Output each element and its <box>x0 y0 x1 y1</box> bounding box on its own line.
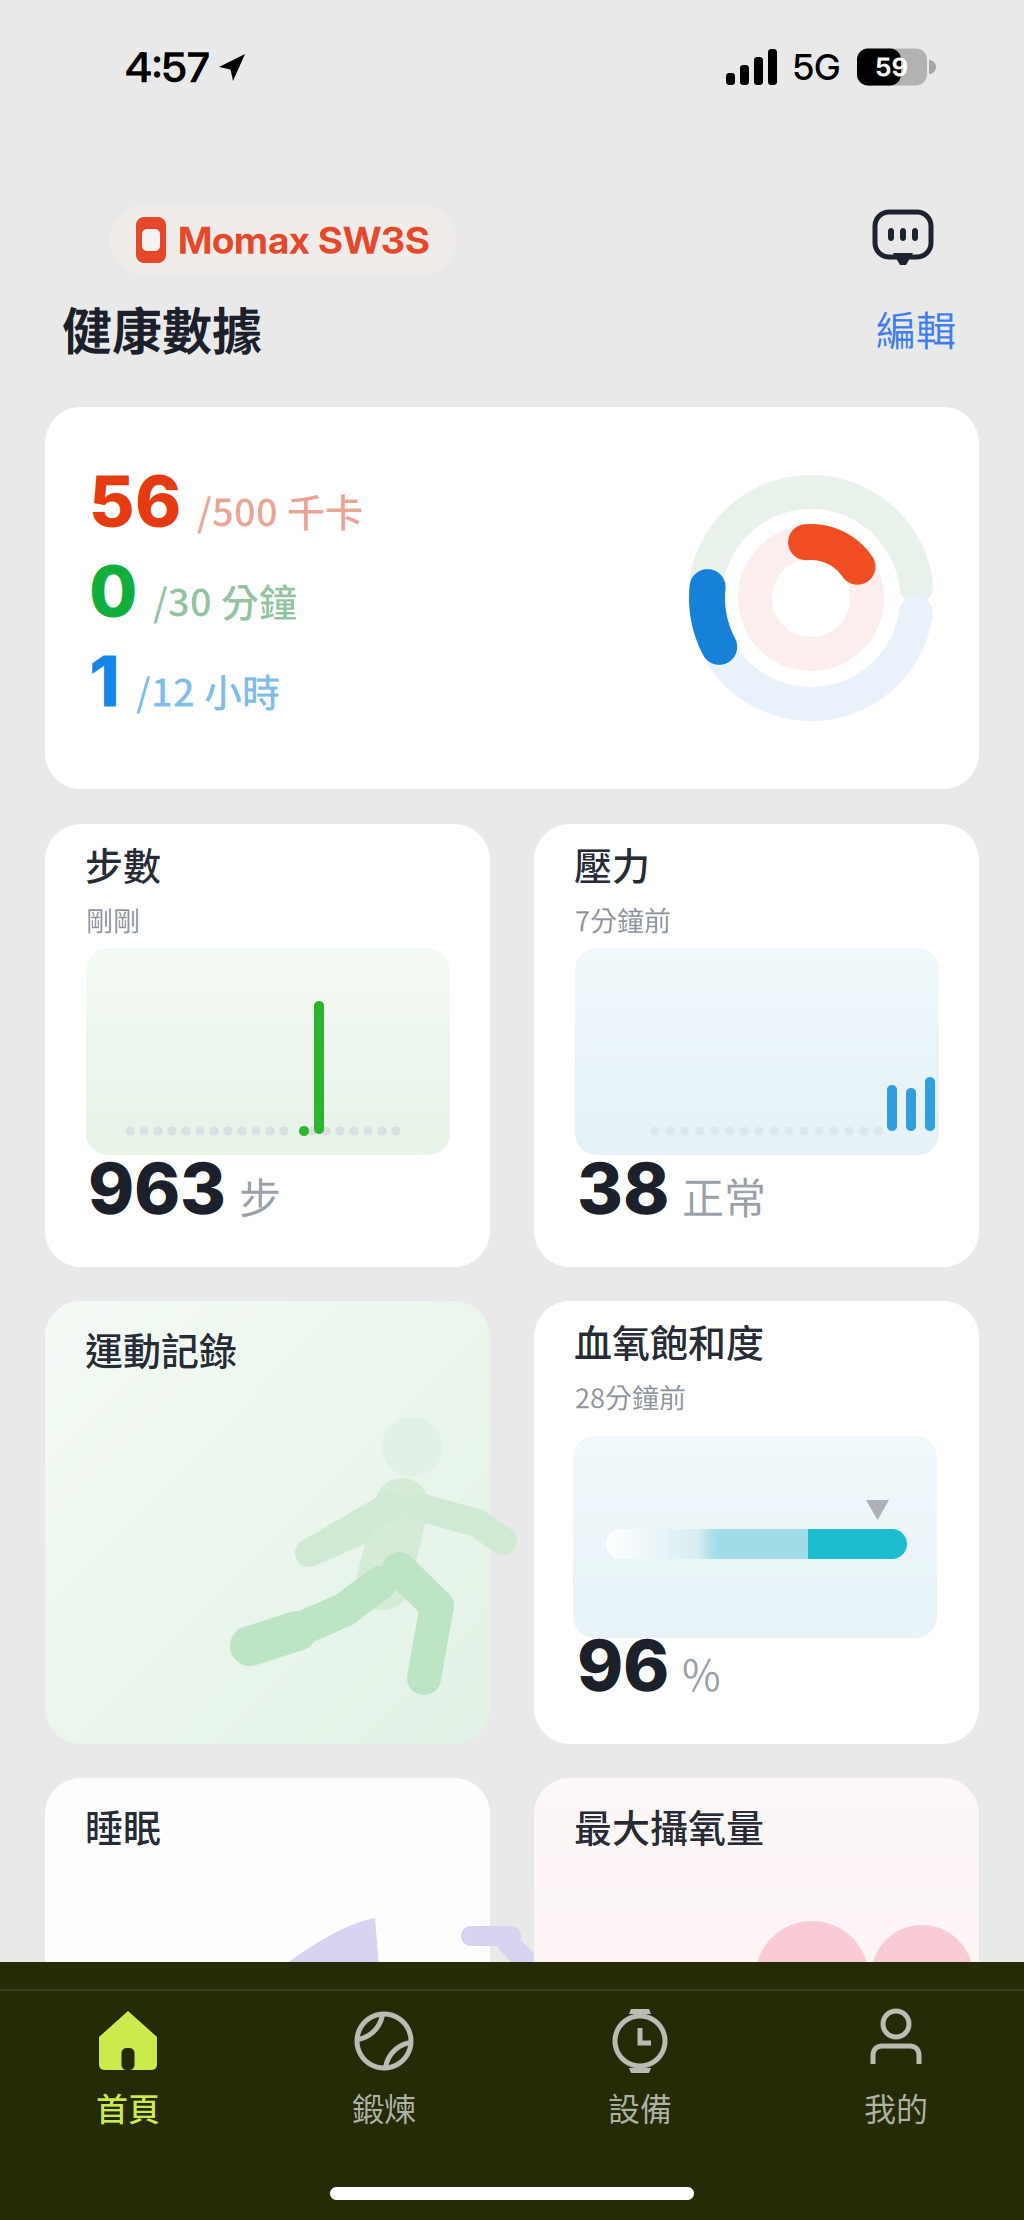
button[interactable]: 血氧飽和度 <box>534 1301 979 1744</box>
staticText: Momax SW3S <box>178 217 430 263</box>
staticText: 5G <box>793 45 841 89</box>
staticText: 0 <box>89 549 137 633</box>
staticText: 剛剛 <box>86 900 140 939</box>
staticText: 設備 <box>608 2084 672 2130</box>
staticText: 正常 <box>682 1165 766 1226</box>
staticText: % <box>682 1642 721 1703</box>
button[interactable]: 編輯 <box>876 299 956 357</box>
staticText: 壓力 <box>574 836 650 891</box>
staticText: 59 <box>875 51 908 83</box>
staticText: 首頁 <box>96 2084 160 2130</box>
staticText: /30 分鐘 <box>153 572 297 627</box>
button[interactable]: 最大攝氧量 <box>534 1778 979 2220</box>
button[interactable]: 步數 <box>45 824 490 1267</box>
staticText: 步 <box>239 1165 281 1226</box>
button[interactable]: 運動記錄 <box>45 1301 490 1744</box>
staticText: /12 小時 <box>136 662 280 717</box>
staticText: 編輯 <box>876 299 956 357</box>
staticText: 我的 <box>864 2084 928 2130</box>
staticText: 28分鐘前 <box>575 1377 686 1416</box>
staticText: 鍛煉 <box>352 2084 416 2130</box>
button[interactable]: 我的 <box>768 2008 1024 2130</box>
staticText: 38 <box>577 1146 669 1231</box>
staticText: 運動記錄 <box>85 1321 237 1376</box>
staticText: 步數 <box>85 836 161 891</box>
button[interactable]: 壓力 <box>534 824 979 1267</box>
staticText: 血氧飽和度 <box>574 1313 764 1368</box>
button[interactable]: 鍛煉 <box>256 2008 512 2130</box>
button[interactable]: 設備 <box>512 2008 768 2130</box>
staticText: 健康數據 <box>62 292 262 364</box>
button[interactable]: Messages <box>874 212 932 268</box>
button[interactable]: 56 <box>45 407 979 789</box>
staticText: 96 <box>577 1623 669 1708</box>
staticText: /500 千卡 <box>197 482 363 537</box>
staticText: 56 <box>89 459 181 543</box>
staticText: 1 <box>89 639 120 723</box>
staticText: 4:57 <box>125 42 210 92</box>
button[interactable]: Momax SW3S <box>110 205 456 275</box>
staticText: 7分鐘前 <box>575 900 671 939</box>
staticText: 963 <box>88 1146 226 1231</box>
staticText: 最大攝氧量 <box>574 1798 764 1853</box>
button[interactable]: 睡眠 <box>45 1778 490 2220</box>
staticText: 睡眠 <box>85 1798 161 1853</box>
button[interactable]: 首頁 <box>0 2008 256 2130</box>
